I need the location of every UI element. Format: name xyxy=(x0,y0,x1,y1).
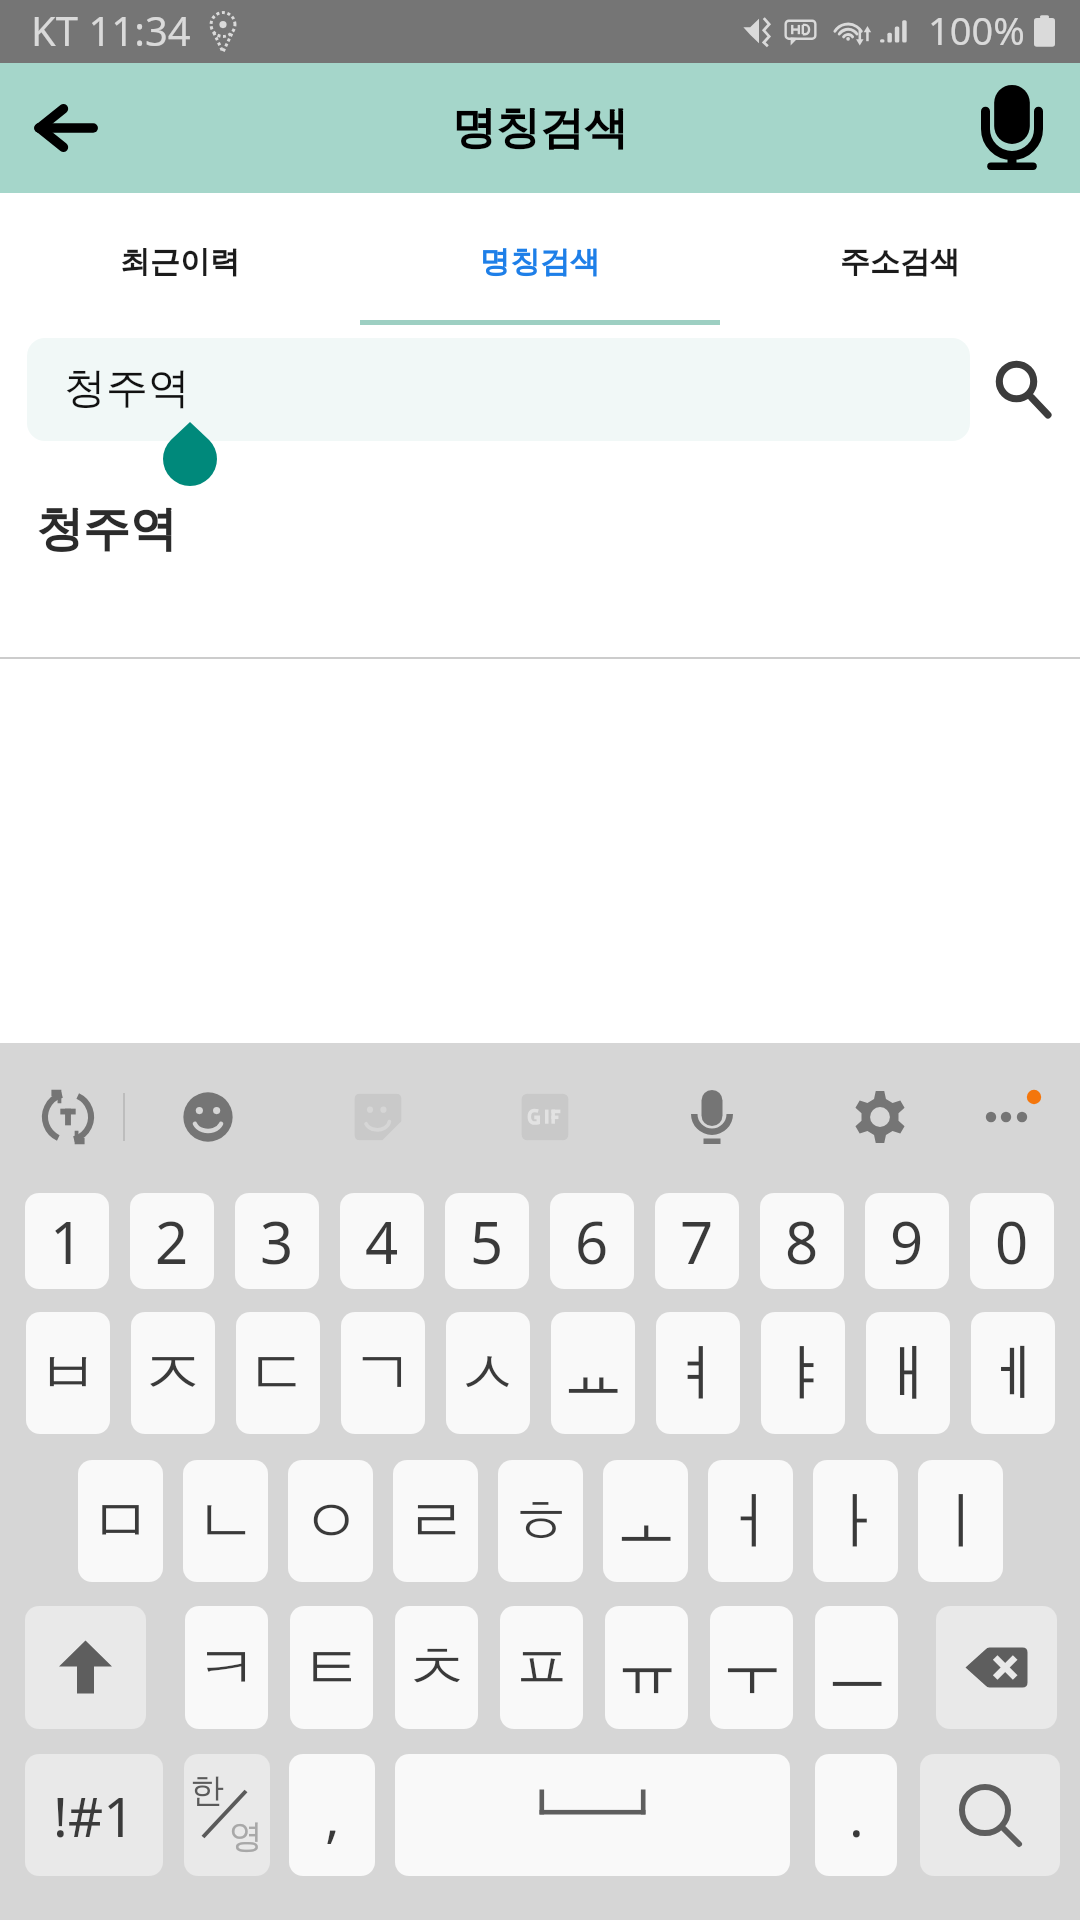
staticText: ㅌ xyxy=(301,1629,363,1707)
staticText: !#1 xyxy=(53,1778,135,1853)
button[interactable]: Search xyxy=(920,1754,1060,1876)
button[interactable]: ㅁ xyxy=(78,1460,163,1582)
staticText: . xyxy=(849,1778,864,1853)
button[interactable]: 6 xyxy=(550,1193,634,1289)
button[interactable]: 9 xyxy=(865,1193,949,1289)
staticText: 7 xyxy=(680,1202,714,1281)
button[interactable]: 1 xyxy=(25,1193,109,1289)
button[interactable]: ㅕ xyxy=(656,1312,740,1434)
button[interactable]: Korean / English xyxy=(184,1754,270,1876)
staticText: 한 xyxy=(190,1769,224,1812)
button[interactable]: ㅂ xyxy=(26,1312,110,1434)
staticText: ㅛ xyxy=(562,1334,624,1412)
button[interactable]: Search xyxy=(968,338,1071,441)
staticText: 명칭검색 xyxy=(480,243,600,281)
staticText: ㅋ xyxy=(196,1629,258,1707)
button[interactable]: ㅋ xyxy=(185,1606,268,1729)
button[interactable]: ㅏ xyxy=(813,1460,898,1582)
staticText: 2 xyxy=(155,1202,189,1281)
button[interactable]: ㅡ xyxy=(815,1606,898,1729)
staticText: ㄴ xyxy=(195,1482,257,1560)
staticText: 100% xyxy=(928,4,1025,56)
button[interactable]: 7 xyxy=(655,1193,739,1289)
button[interactable]: 3 xyxy=(235,1193,319,1289)
button[interactable]: 2 xyxy=(130,1193,214,1289)
button[interactable]: . xyxy=(815,1754,897,1876)
staticText: ㅍ xyxy=(511,1629,573,1707)
button[interactable]: 주소검색 xyxy=(720,193,1080,327)
button[interactable]: ㄱ xyxy=(341,1312,425,1434)
staticText: ㄷ xyxy=(247,1334,309,1412)
staticText: 6 xyxy=(575,1202,609,1281)
button[interactable]: ㅐ xyxy=(866,1312,950,1434)
staticText: 5 xyxy=(470,1202,504,1281)
staticText: 청주역 xyxy=(36,500,177,559)
button[interactable]: ㅠ xyxy=(605,1606,688,1729)
staticText: , xyxy=(325,1778,340,1853)
staticText: ㅅ xyxy=(457,1334,519,1412)
staticText: ㅐ xyxy=(877,1334,939,1412)
staticText: ㅁ xyxy=(90,1482,152,1560)
button[interactable]: 8 xyxy=(760,1193,844,1289)
button[interactable]: ㅊ xyxy=(395,1606,478,1729)
button[interactable]: ㅗ xyxy=(603,1460,688,1582)
staticText: 청주역 xyxy=(64,362,190,415)
staticText: ㅓ xyxy=(720,1482,782,1560)
staticText: ㅏ xyxy=(825,1482,887,1560)
staticText: ㅡ xyxy=(826,1629,888,1707)
button[interactable]: ㅓ xyxy=(708,1460,793,1582)
button[interactable]: Backspace xyxy=(936,1606,1057,1729)
staticText: 8 xyxy=(785,1202,819,1281)
staticText: 명칭검색 xyxy=(452,101,628,156)
staticText: ㅑ xyxy=(772,1334,834,1412)
button[interactable]: ㅌ xyxy=(290,1606,373,1729)
button[interactable]: Shift xyxy=(25,1606,146,1729)
button[interactable]: Settings xyxy=(848,1085,912,1149)
staticText: 영 xyxy=(229,1815,263,1858)
button[interactable]: 최근이력 xyxy=(0,193,360,327)
staticText: ㄱ xyxy=(352,1334,414,1412)
staticText: ㅕ xyxy=(667,1334,729,1412)
button[interactable]: ㅈ xyxy=(131,1312,215,1434)
button[interactable]: 청주역 xyxy=(27,338,970,441)
button[interactable]: ㅛ xyxy=(551,1312,635,1434)
staticText: 9 xyxy=(890,1202,924,1281)
button[interactable]: ㅇ xyxy=(288,1460,373,1582)
button[interactable]: ㅜ xyxy=(710,1606,793,1729)
button[interactable]: 4 xyxy=(340,1193,424,1289)
button[interactable]: Emoji xyxy=(176,1085,240,1149)
staticText: 0 xyxy=(995,1202,1029,1281)
button[interactable]: 0 xyxy=(970,1193,1054,1289)
button[interactable]: ㄴ xyxy=(183,1460,268,1582)
button[interactable]: ㅔ xyxy=(971,1312,1055,1434)
button[interactable]: Back xyxy=(0,63,132,193)
button[interactable]: More options xyxy=(974,1085,1038,1149)
button[interactable]: ㅑ xyxy=(761,1312,845,1434)
button[interactable]: Translate xyxy=(36,1085,100,1149)
staticText: ㄹ xyxy=(405,1482,467,1560)
staticText: ㅠ xyxy=(616,1629,678,1707)
staticText: ㅎ xyxy=(510,1482,572,1560)
button[interactable]: ㄹ xyxy=(393,1460,478,1582)
staticText: ㅜ xyxy=(721,1629,783,1707)
staticText: ㅗ xyxy=(615,1482,677,1560)
button[interactable]: , xyxy=(289,1754,375,1876)
button[interactable]: Stickers xyxy=(346,1085,410,1149)
button[interactable]: !#1 xyxy=(25,1754,163,1876)
staticText: ㅇ xyxy=(300,1482,362,1560)
button[interactable]: Voice input xyxy=(680,1085,744,1149)
staticText: ㅣ xyxy=(930,1482,992,1560)
button[interactable]: Voice search xyxy=(944,63,1080,193)
button[interactable]: GIF xyxy=(513,1085,577,1149)
button[interactable]: Space xyxy=(395,1754,790,1876)
button[interactable]: 5 xyxy=(445,1193,529,1289)
staticText: 4 xyxy=(365,1202,399,1281)
button[interactable]: ㅎ xyxy=(498,1460,583,1582)
button[interactable]: ㅅ xyxy=(446,1312,530,1434)
button[interactable]: ㄷ xyxy=(236,1312,320,1434)
button[interactable]: 명칭검색 xyxy=(360,193,720,327)
staticText: ㅈ xyxy=(142,1334,204,1412)
button[interactable]: ㅣ xyxy=(918,1460,1003,1582)
button[interactable]: ㅍ xyxy=(500,1606,583,1729)
staticText: 최근이력 xyxy=(120,243,240,281)
